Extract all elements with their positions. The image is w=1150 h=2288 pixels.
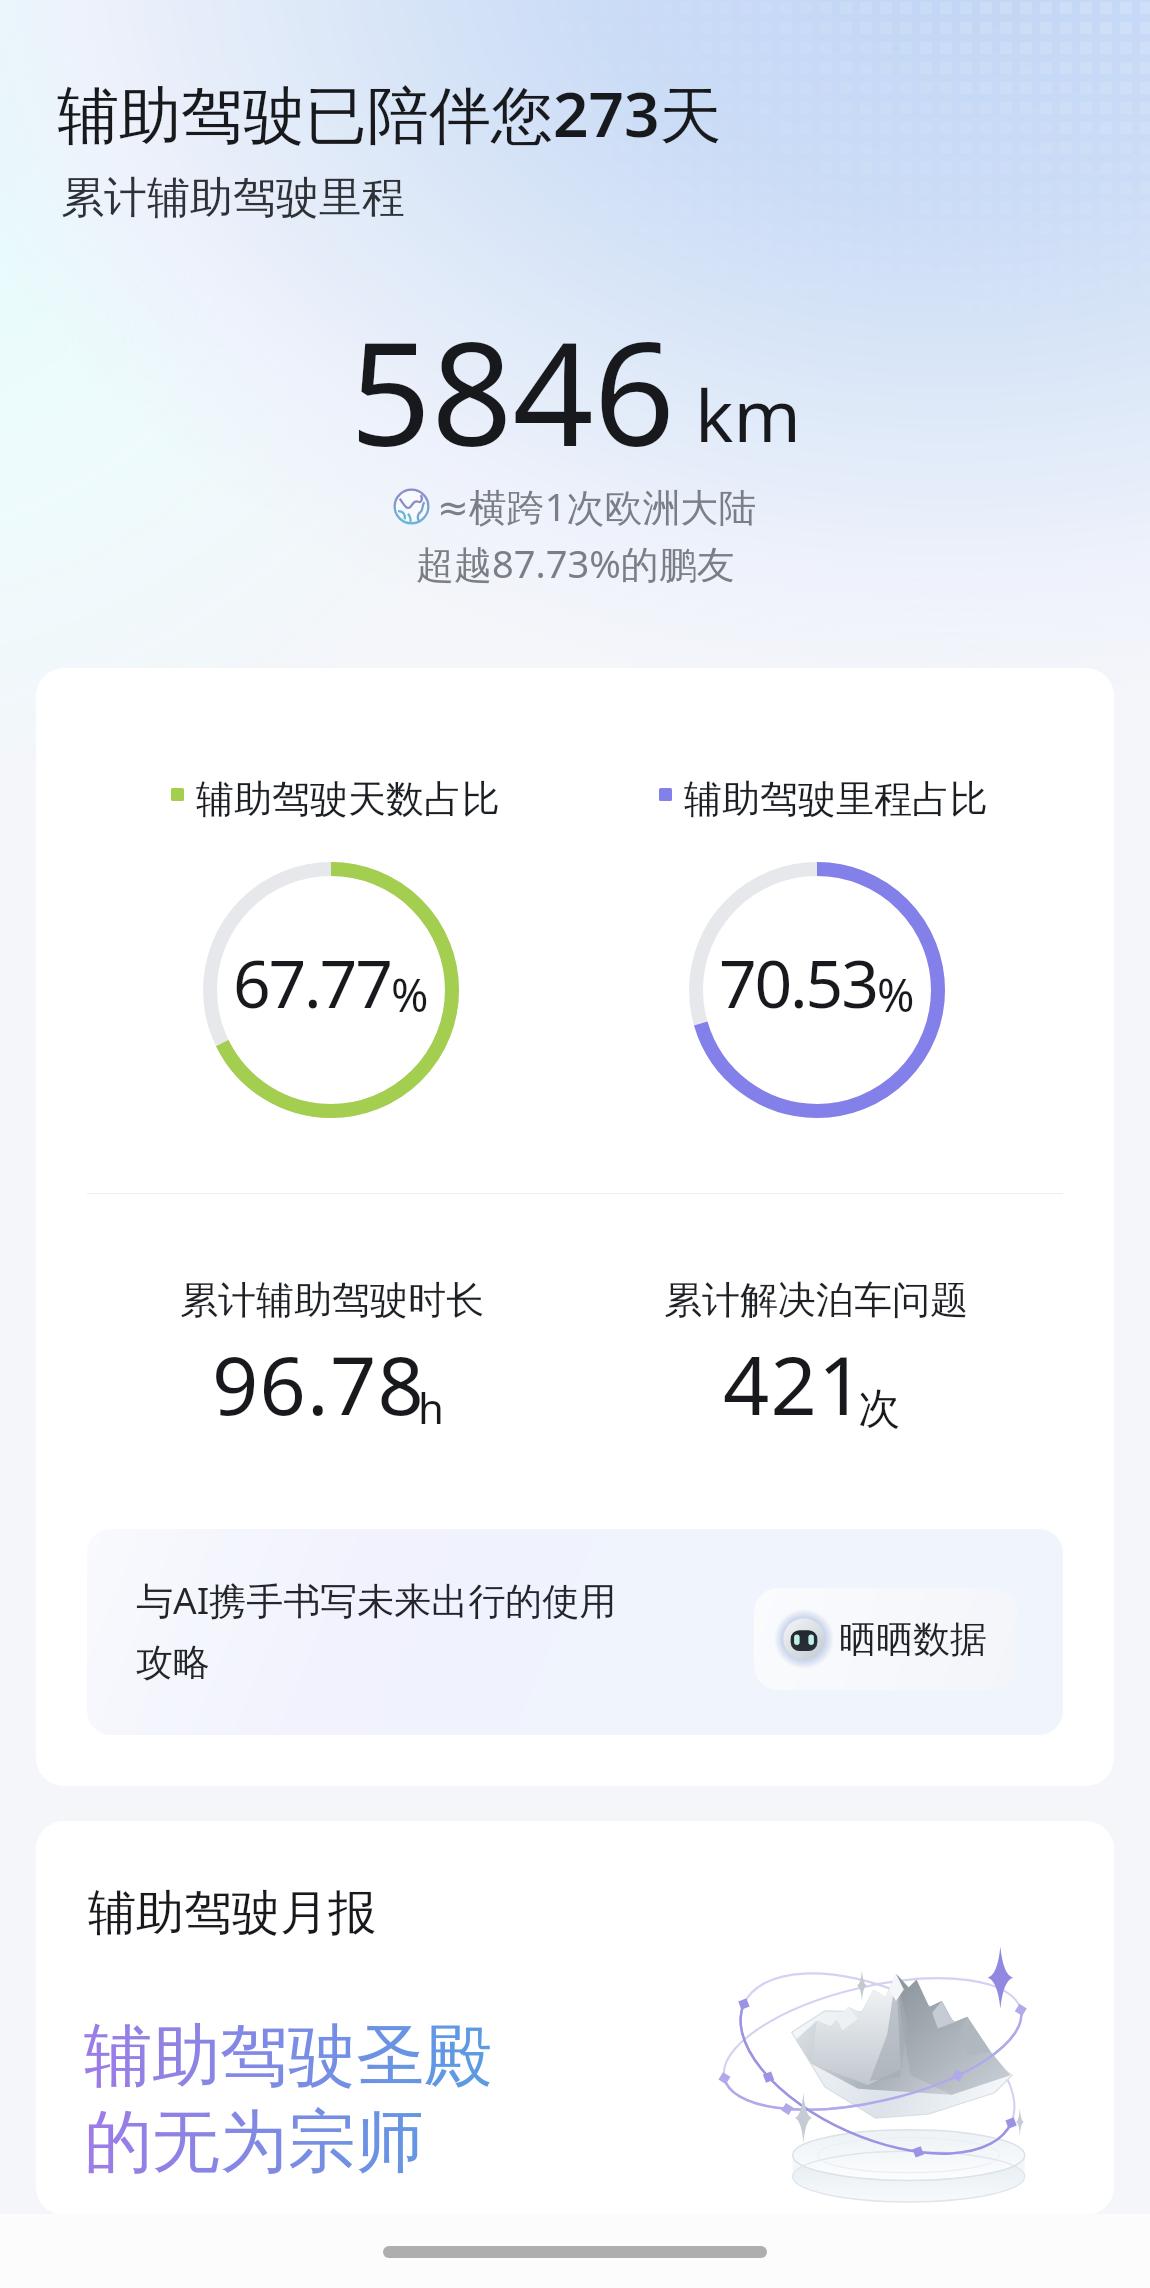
staticText: 70.53 — [719, 937, 877, 1027]
button[interactable]: 与AI携手书写未来出行的使用 攻略 — [87, 1529, 1063, 1735]
staticText: 辅助驾驶月报 — [88, 1883, 376, 1943]
staticText: 421 — [723, 1328, 866, 1438]
staticText: 超越87.73%的鹏友 — [416, 537, 735, 589]
staticText: h — [418, 1379, 444, 1436]
staticText: 与AI携手书写未来出行的使用 攻略 — [136, 1574, 617, 1686]
staticText: % — [391, 964, 429, 1025]
staticText: km — [695, 365, 801, 463]
staticText: 96.78 — [212, 1328, 426, 1438]
staticText: 辅助驾驶圣殿 的无为宗师 — [84, 2014, 492, 2185]
button[interactable]: 晒晒数据 — [754, 1588, 1018, 1690]
staticText: 辅助驾驶天数占比 — [196, 775, 500, 823]
staticText: 晒晒数据 — [839, 1616, 987, 1663]
staticText: 累计解决泊车问题 — [664, 1276, 968, 1324]
staticText: % — [877, 964, 915, 1025]
staticText: ≈横跨1次欧洲大陆 — [437, 480, 757, 532]
staticText: 辅助驾驶里程占比 — [684, 775, 988, 823]
staticText: 辅助驾驶已陪伴您273天 — [57, 71, 722, 156]
staticText: 5846 — [350, 294, 675, 454]
button[interactable]: 辅助驾驶月报 — [36, 1821, 1114, 2215]
staticText: 累计辅助驾驶时长 — [180, 1276, 484, 1324]
staticText: 67.77 — [233, 937, 391, 1027]
staticText: 次 — [858, 1383, 900, 1436]
staticText: 累计辅助驾驶里程 — [61, 171, 405, 225]
